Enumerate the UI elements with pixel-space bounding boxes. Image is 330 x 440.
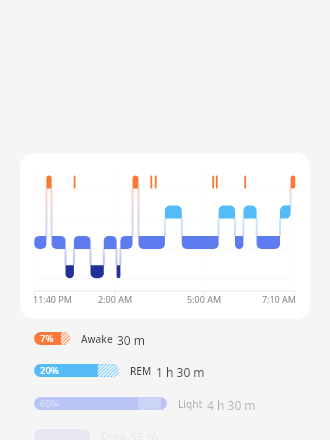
staticText: Awake <box>81 332 113 345</box>
staticText: 30 m <box>117 332 146 345</box>
staticText: 7:10 AM <box>216 293 296 305</box>
staticText: Deep <box>101 429 126 440</box>
staticText: 20% <box>40 364 59 377</box>
staticText: 7% <box>40 332 54 345</box>
staticText: 55 m <box>130 429 159 440</box>
button[interactable]: 60% <box>34 397 256 410</box>
staticText: 11:40 PM <box>33 293 113 305</box>
staticText: 4 h 30 m <box>207 397 256 410</box>
staticText: REM <box>130 364 152 377</box>
staticText: 5:00 AM <box>164 293 244 305</box>
staticText: 60% <box>40 397 59 410</box>
button[interactable]: 20% <box>34 364 205 377</box>
staticText: 1 h 30 m <box>156 364 205 377</box>
button[interactable]: 7% <box>34 332 146 345</box>
button[interactable]: 13% <box>34 429 159 440</box>
staticText: 2:00 AM <box>75 293 155 305</box>
staticText: Light <box>178 397 203 410</box>
